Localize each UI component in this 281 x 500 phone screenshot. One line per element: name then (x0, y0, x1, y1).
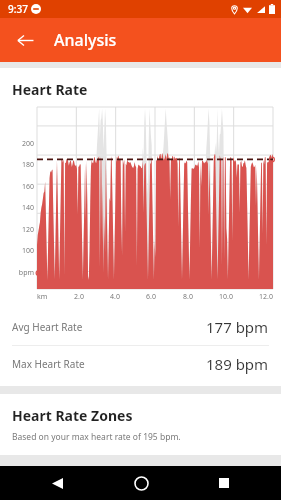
staticText: 189 bpm (206, 354, 269, 374)
button[interactable]: Avg Heart Rate (0, 309, 281, 345)
staticText: km (37, 292, 48, 302)
staticText: 120 (8, 225, 34, 235)
staticText: 100 (8, 246, 34, 256)
staticText: Heart Rate Zones (12, 406, 133, 425)
staticText: 2.0 (74, 292, 84, 302)
button[interactable]: Recents (211, 470, 237, 496)
staticText: Analysis (54, 29, 117, 51)
staticText: 140 (8, 203, 34, 213)
staticText: 10.0 (219, 292, 233, 302)
button[interactable]: Back (44, 470, 70, 496)
staticText: Heart Rate (12, 80, 88, 99)
button[interactable]: Back (8, 23, 42, 57)
button[interactable]: Max Heart Rate (0, 346, 281, 382)
staticText: bpm (8, 268, 34, 278)
staticText: 160 (8, 182, 34, 192)
staticText: 8.0 (183, 292, 193, 302)
staticText: 6.0 (146, 292, 156, 302)
staticText: Avg Heart Rate (12, 320, 83, 334)
staticText: 12.0 (259, 292, 273, 302)
staticText: 200 (8, 139, 34, 149)
staticText: 180 (8, 160, 34, 170)
staticText: 9:37 (8, 2, 28, 16)
staticText: Based on your max heart rate of 195 bpm. (12, 431, 181, 443)
staticText: 4.0 (110, 292, 120, 302)
staticText: Max Heart Rate (12, 357, 85, 371)
button[interactable]: Home (128, 470, 154, 496)
staticText: 177 bpm (206, 317, 269, 337)
